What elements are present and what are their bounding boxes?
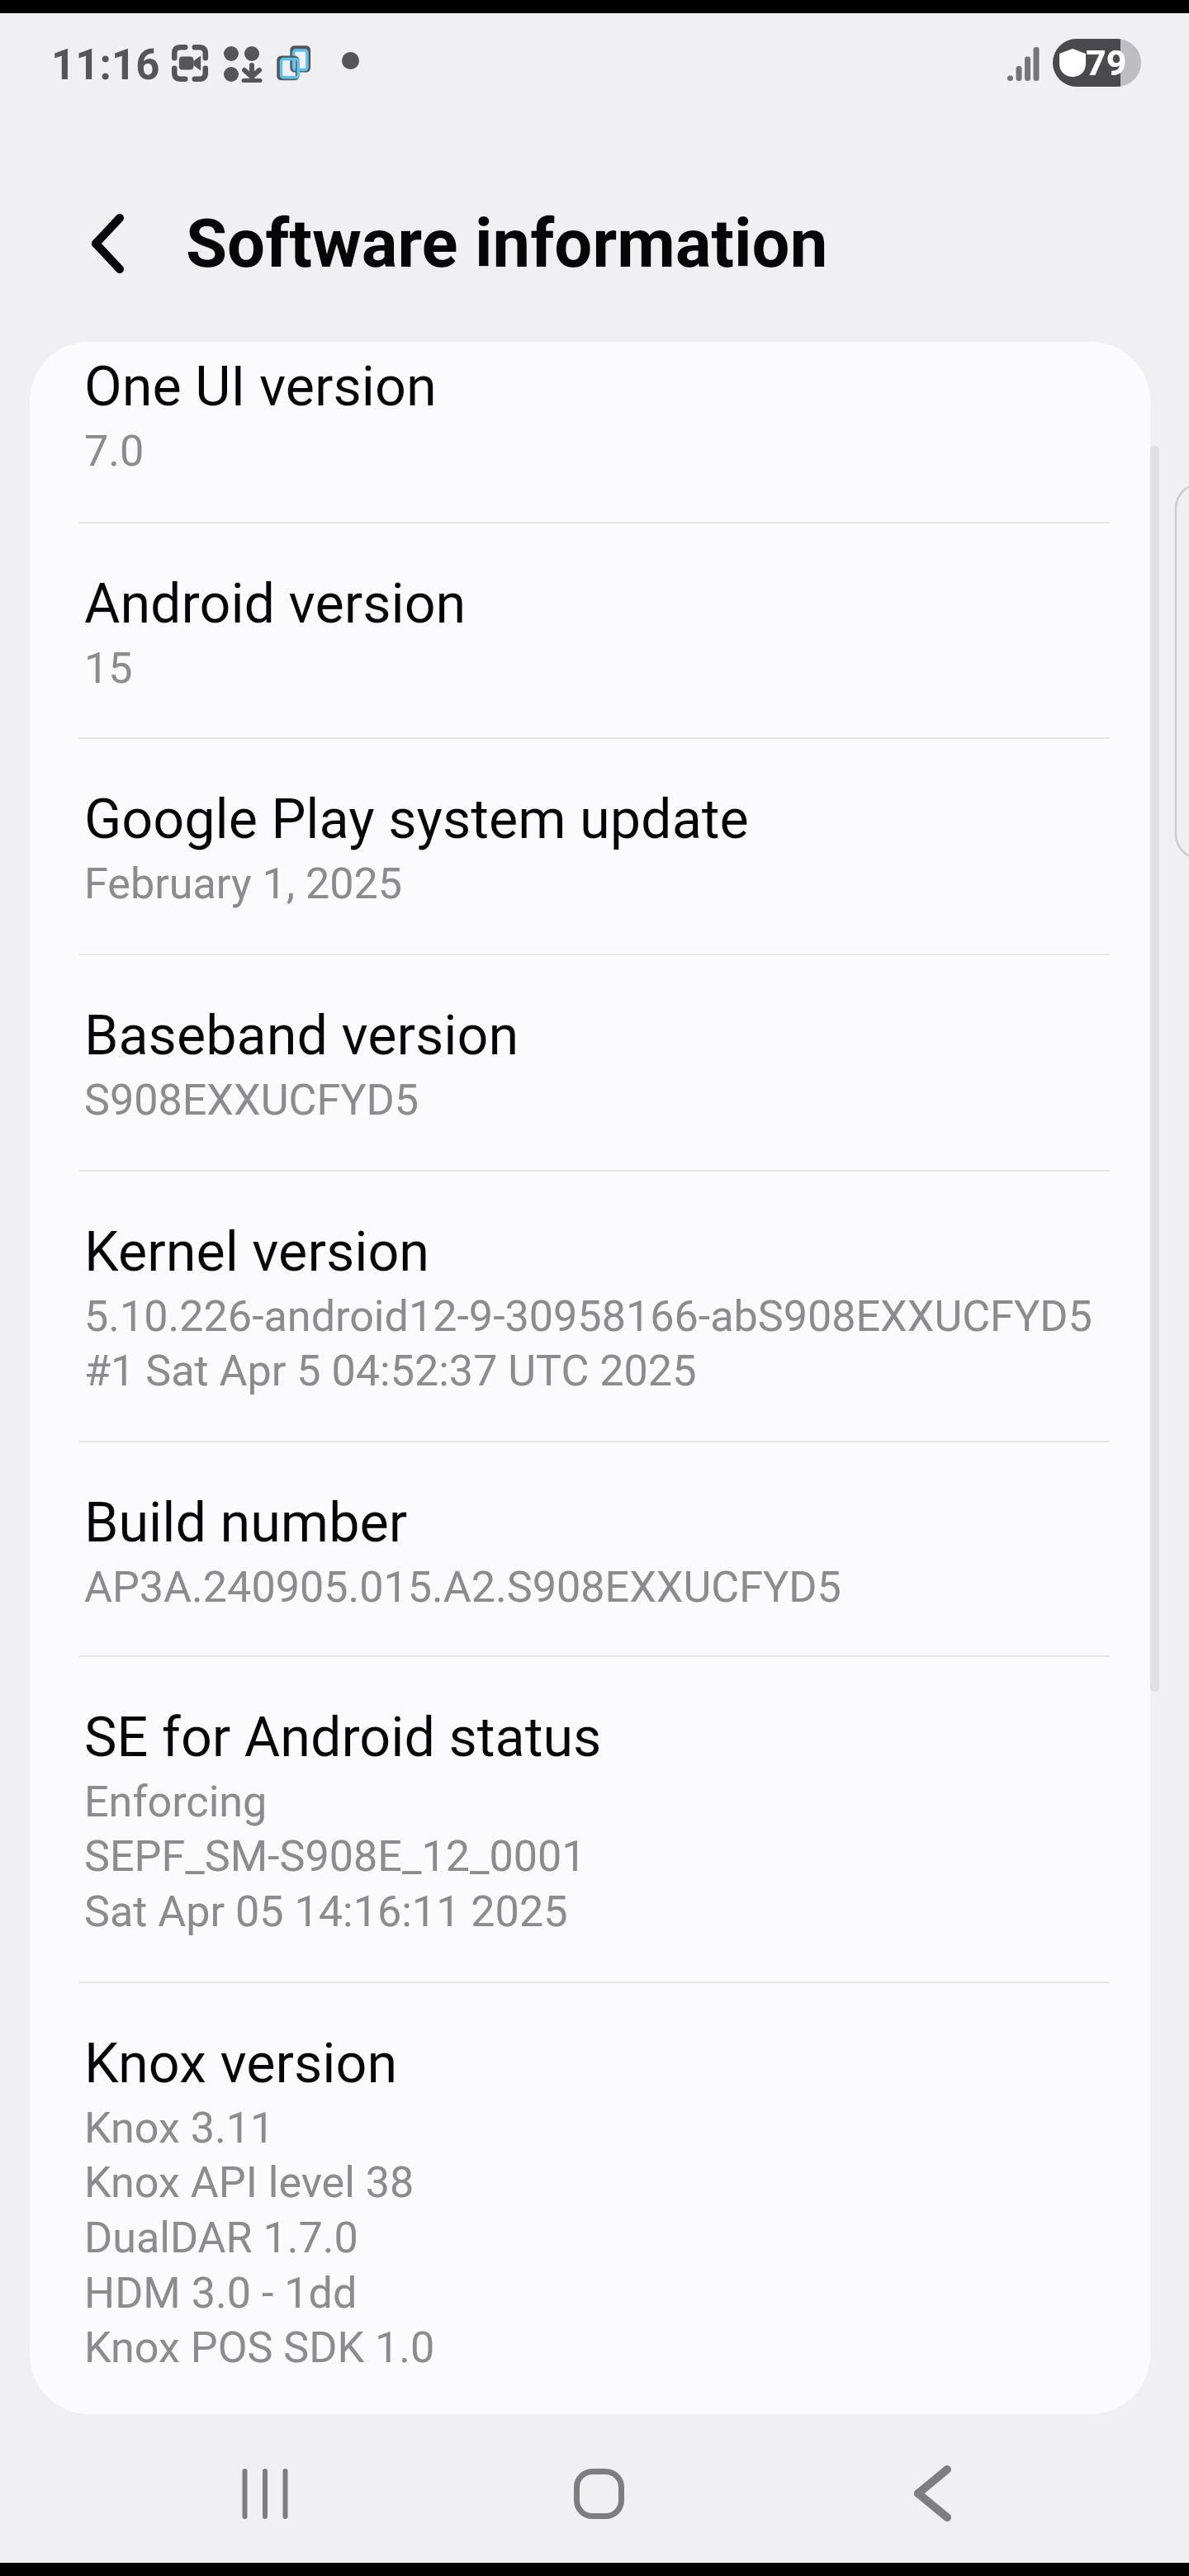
- staticText: HDM 3.0 - 1dd: [84, 2268, 358, 2318]
- staticText: 79: [1086, 42, 1127, 83]
- button[interactable]: Build number: [30, 1442, 1150, 1657]
- staticText: DualDAR 1.7.0: [84, 2213, 358, 2263]
- button[interactable]: Home: [467, 2411, 731, 2576]
- staticText: Knox API level 38: [84, 2157, 414, 2208]
- staticText: AP3A.240905.015.A2.S908EXXUCFYD5: [84, 1562, 841, 1612]
- staticText: Enforcing: [84, 1777, 268, 1827]
- staticText: Knox POS SDK 1.0: [84, 2323, 435, 2373]
- button[interactable]: SE for Android status: [30, 1657, 1150, 1983]
- button[interactable]: Knox version: [30, 1983, 1150, 2414]
- staticText: Knox version: [84, 2031, 398, 2095]
- staticText: SE for Android status: [84, 1705, 602, 1769]
- staticText: Kernel version: [84, 1219, 430, 1284]
- staticText: One UI version: [84, 354, 437, 419]
- button[interactable]: Baseband version: [30, 955, 1150, 1172]
- button[interactable]: Recent apps: [133, 2411, 397, 2576]
- staticText: #1 Sat Apr 5 04:52:37 UTC 2025: [84, 1346, 697, 1396]
- staticText: Google Play system update: [84, 787, 749, 851]
- button[interactable]: Navigate up: [47, 197, 168, 290]
- staticText: 11:16: [51, 40, 160, 90]
- button[interactable]: Back: [800, 2411, 1064, 2576]
- staticText: 15: [84, 643, 133, 694]
- button[interactable]: Google Play system update: [30, 739, 1150, 955]
- staticText: Software information: [186, 204, 828, 283]
- staticText: Android version: [84, 571, 467, 636]
- button[interactable]: Android version: [30, 523, 1150, 739]
- button[interactable]: One UI version: [30, 342, 1150, 523]
- staticText: Baseband version: [84, 1003, 519, 1068]
- staticText: S908EXXUCFYD5: [84, 1075, 419, 1125]
- staticText: 7.0: [84, 426, 144, 476]
- staticText: SEPF_SM-S908E_12_0001: [84, 1831, 586, 1882]
- staticText: February 1, 2025: [84, 859, 403, 909]
- staticText: Sat Apr 05 14:16:11 2025: [84, 1887, 568, 1937]
- staticText: Build number: [84, 1490, 408, 1555]
- staticText: Knox 3.11: [84, 2103, 275, 2153]
- button[interactable]: Kernel version: [30, 1172, 1150, 1442]
- staticText: 5.10.226-android12-9-30958166-abS908EXXU…: [84, 1291, 1092, 1342]
